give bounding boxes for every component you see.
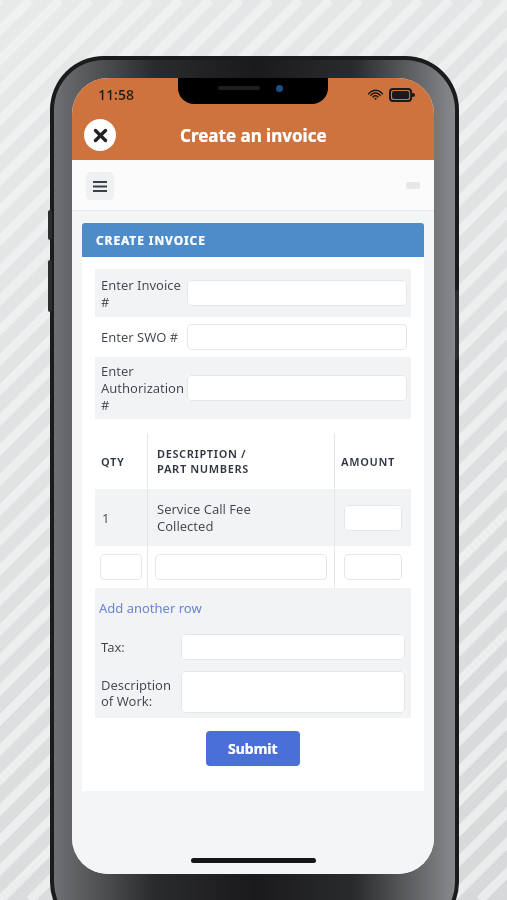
button[interactable] bbox=[187, 375, 407, 401]
staticText: Enter SWO # bbox=[101, 328, 187, 346]
staticText: DESCRIPTION / PART NUMBERS bbox=[157, 446, 249, 476]
staticText: Submit bbox=[228, 739, 278, 758]
staticText: Service Call Fee Collected bbox=[157, 500, 251, 535]
staticText: QTY bbox=[101, 454, 125, 469]
staticText: Description of Work: bbox=[101, 676, 181, 709]
button[interactable] bbox=[155, 554, 327, 580]
staticText: Create an invoice bbox=[180, 124, 327, 147]
button[interactable] bbox=[181, 671, 405, 713]
staticText: Enter Invoice # bbox=[101, 276, 187, 311]
button[interactable] bbox=[344, 554, 402, 580]
button[interactable]: Submit bbox=[206, 731, 300, 766]
staticText: Enter Authorization # bbox=[101, 362, 187, 414]
staticText: 1 bbox=[102, 509, 110, 527]
staticText: Tax: bbox=[101, 638, 181, 656]
staticText: 11:58 bbox=[98, 85, 134, 104]
button[interactable] bbox=[181, 634, 405, 660]
button[interactable] bbox=[187, 324, 407, 350]
button[interactable] bbox=[187, 280, 407, 306]
staticText: CREATE INVOICE bbox=[96, 232, 206, 248]
staticText: AMOUNT bbox=[341, 454, 395, 469]
button[interactable]: Add another row bbox=[99, 599, 202, 617]
button[interactable]: Menu bbox=[86, 172, 114, 200]
button[interactable] bbox=[100, 554, 142, 580]
button[interactable]: Close bbox=[84, 119, 116, 151]
button[interactable] bbox=[344, 505, 402, 531]
